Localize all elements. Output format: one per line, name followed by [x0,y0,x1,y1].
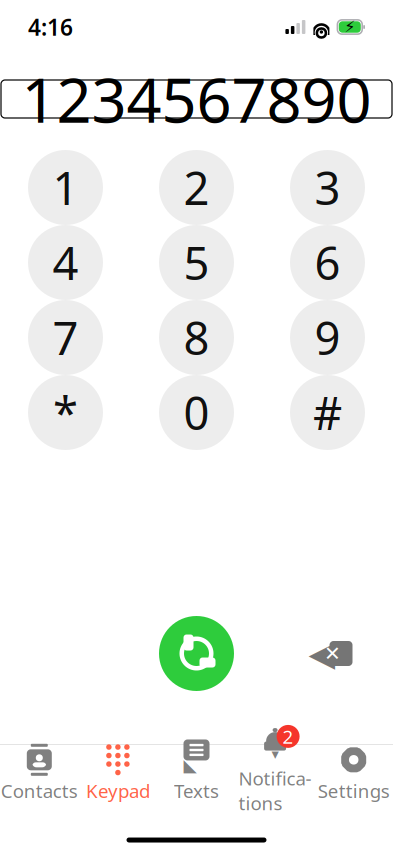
staticText: ◀ [308,634,335,673]
staticText: 4 [52,232,78,293]
button[interactable]: 5 [159,225,234,300]
button[interactable]: 9 [290,300,365,375]
button[interactable]: 6 [290,225,365,300]
staticText: 8 [183,307,209,368]
button[interactable]: 8 [159,300,234,375]
staticText: 7 [52,307,78,368]
button[interactable]: Keypad [79,745,157,803]
staticText: ◣ [183,755,196,775]
staticText: 3 [314,157,340,218]
button[interactable]: 1 [28,150,103,225]
button[interactable]: ◣ [157,745,236,803]
staticText: 2 [183,157,209,218]
staticText: Contacts [1,778,78,803]
button[interactable]: 7 [28,300,103,375]
staticText: Keypad [86,778,150,803]
button[interactable]: Delete [290,628,365,678]
button[interactable]: Contacts [0,745,79,803]
staticText: 6 [314,232,340,293]
button[interactable]: ▾ [236,745,314,803]
staticText: 0 [183,382,209,443]
staticText: 1234567890 [21,58,371,140]
staticText: 9 [314,307,340,368]
staticText: ✕ [324,642,341,665]
staticText: Notifications [239,766,312,815]
staticText: Settings [318,778,390,803]
staticText: 1 [52,157,78,218]
button[interactable]: Settings [314,745,393,803]
staticText: ⚡︎ [344,18,355,36]
staticText: ▾ [272,746,279,762]
button[interactable]: # [290,375,365,450]
button[interactable]: 0 [159,375,234,450]
button[interactable]: 2 [159,150,234,225]
button[interactable]: 3 [290,150,365,225]
staticText: Texts [174,778,219,803]
button[interactable]: 4 [28,225,103,300]
staticText: * [53,382,78,443]
staticText: 2 [283,724,294,749]
button[interactable]: * [28,375,103,450]
staticText: 5 [183,232,209,293]
staticText: 4:16 [28,12,73,42]
button[interactable]: Call [159,616,234,691]
staticText: # [313,382,342,443]
